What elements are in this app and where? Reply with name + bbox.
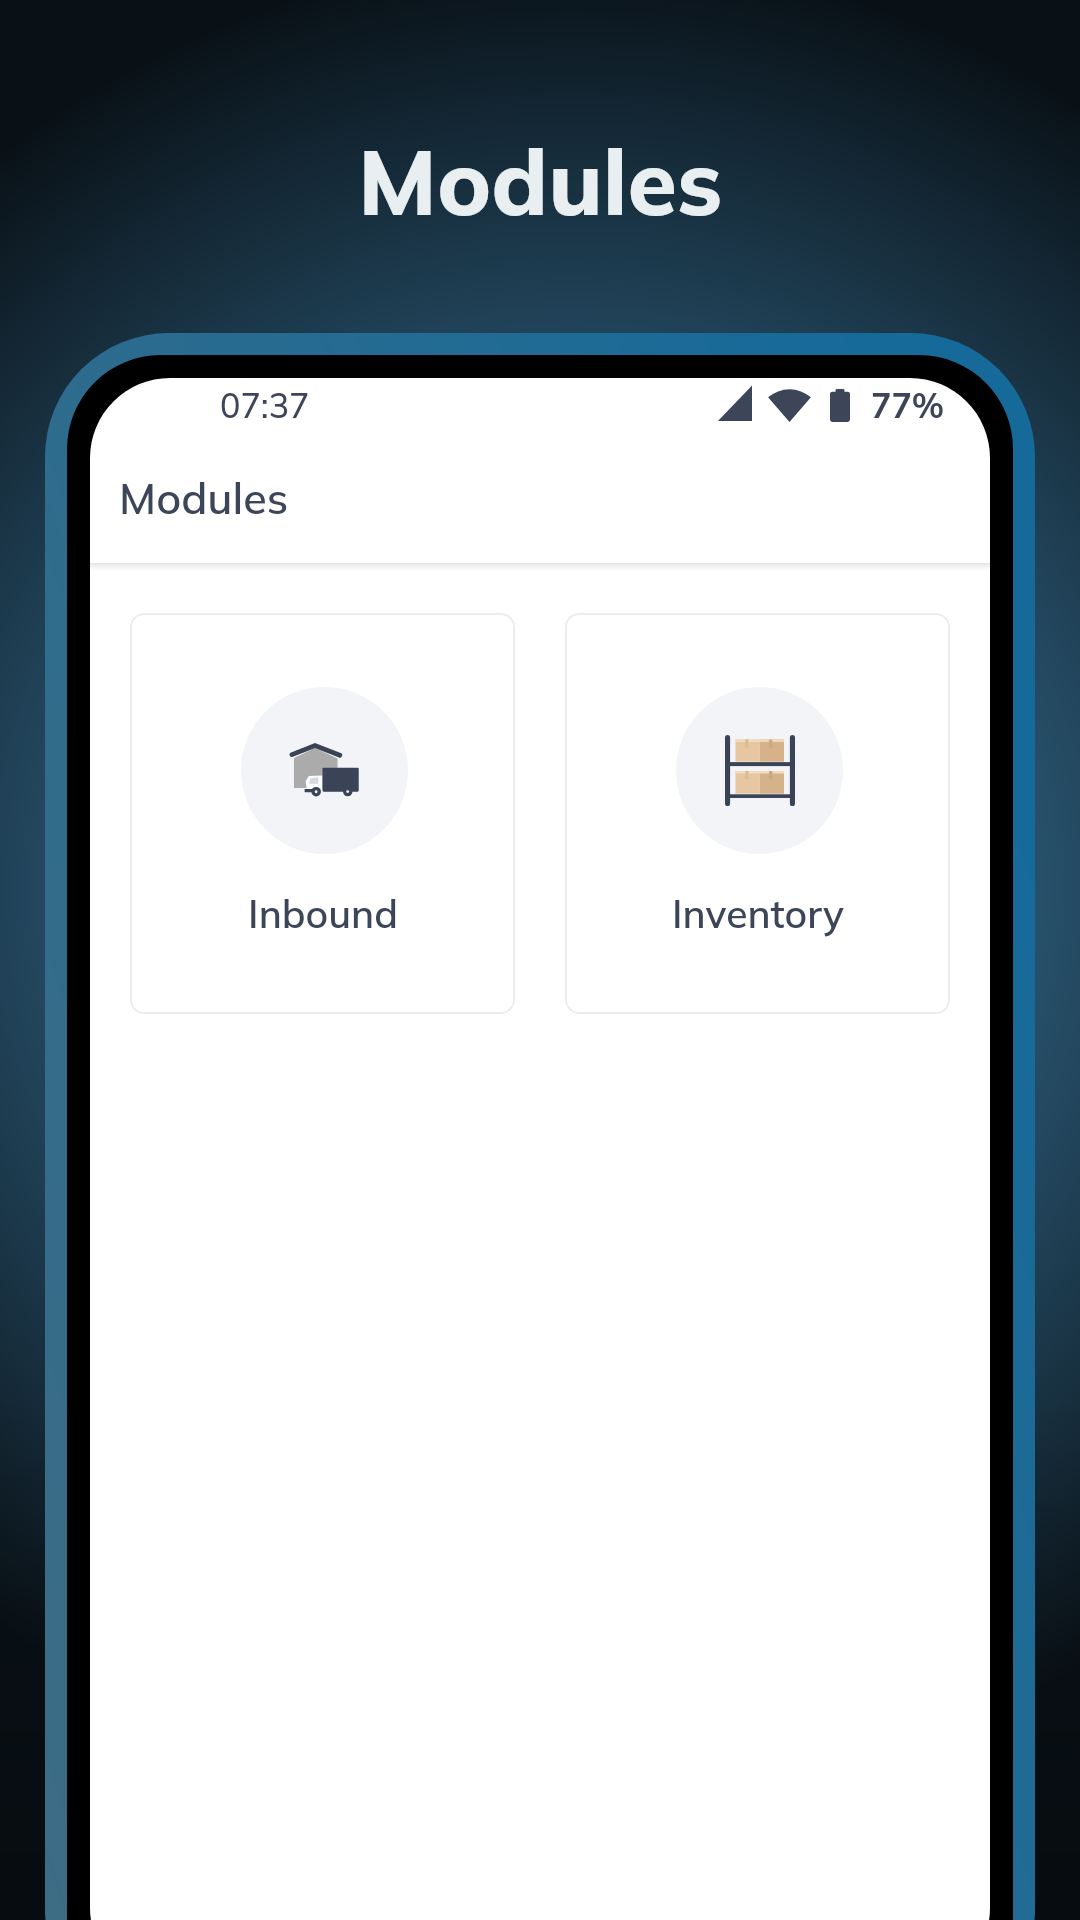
staticText: Inventory bbox=[672, 889, 844, 938]
staticText: Inbound bbox=[248, 889, 398, 938]
button[interactable]: Inventory module bbox=[565, 613, 950, 1014]
button[interactable]: Inbound module bbox=[130, 613, 515, 1014]
staticText: 77% bbox=[871, 384, 945, 427]
staticText: 07:37 bbox=[220, 384, 310, 427]
staticText: Modules bbox=[119, 471, 289, 525]
staticText: Modules bbox=[358, 125, 723, 238]
